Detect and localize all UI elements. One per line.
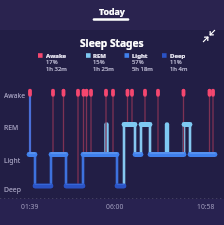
staticText: REM — [93, 52, 106, 60]
staticText: Light — [4, 156, 21, 165]
staticText: 15% — [93, 58, 105, 66]
staticText: REM — [4, 123, 19, 132]
staticText: 57% — [132, 58, 144, 66]
staticText: Today — [99, 6, 125, 18]
staticText: Deep — [4, 185, 21, 194]
staticText: 1h 4m — [170, 65, 188, 73]
staticText: Sleep Stages — [80, 36, 144, 50]
staticText: 1h 25m — [93, 65, 114, 73]
staticText: Deep — [170, 52, 186, 60]
staticText: 01:39 — [21, 202, 39, 211]
button[interactable] — [200, 27, 220, 47]
staticText: 1h 32m — [46, 65, 67, 73]
button[interactable]: Today — [82, 2, 142, 22]
staticText: Awake — [4, 91, 25, 100]
staticText: 10:58 — [197, 202, 215, 211]
staticText: 11% — [170, 58, 182, 66]
staticText: 06:00 — [106, 202, 124, 211]
staticText: Light — [132, 52, 148, 60]
staticText: Awake — [46, 52, 67, 60]
staticText: 17% — [46, 58, 58, 66]
staticText: 5h 18m — [132, 65, 153, 73]
